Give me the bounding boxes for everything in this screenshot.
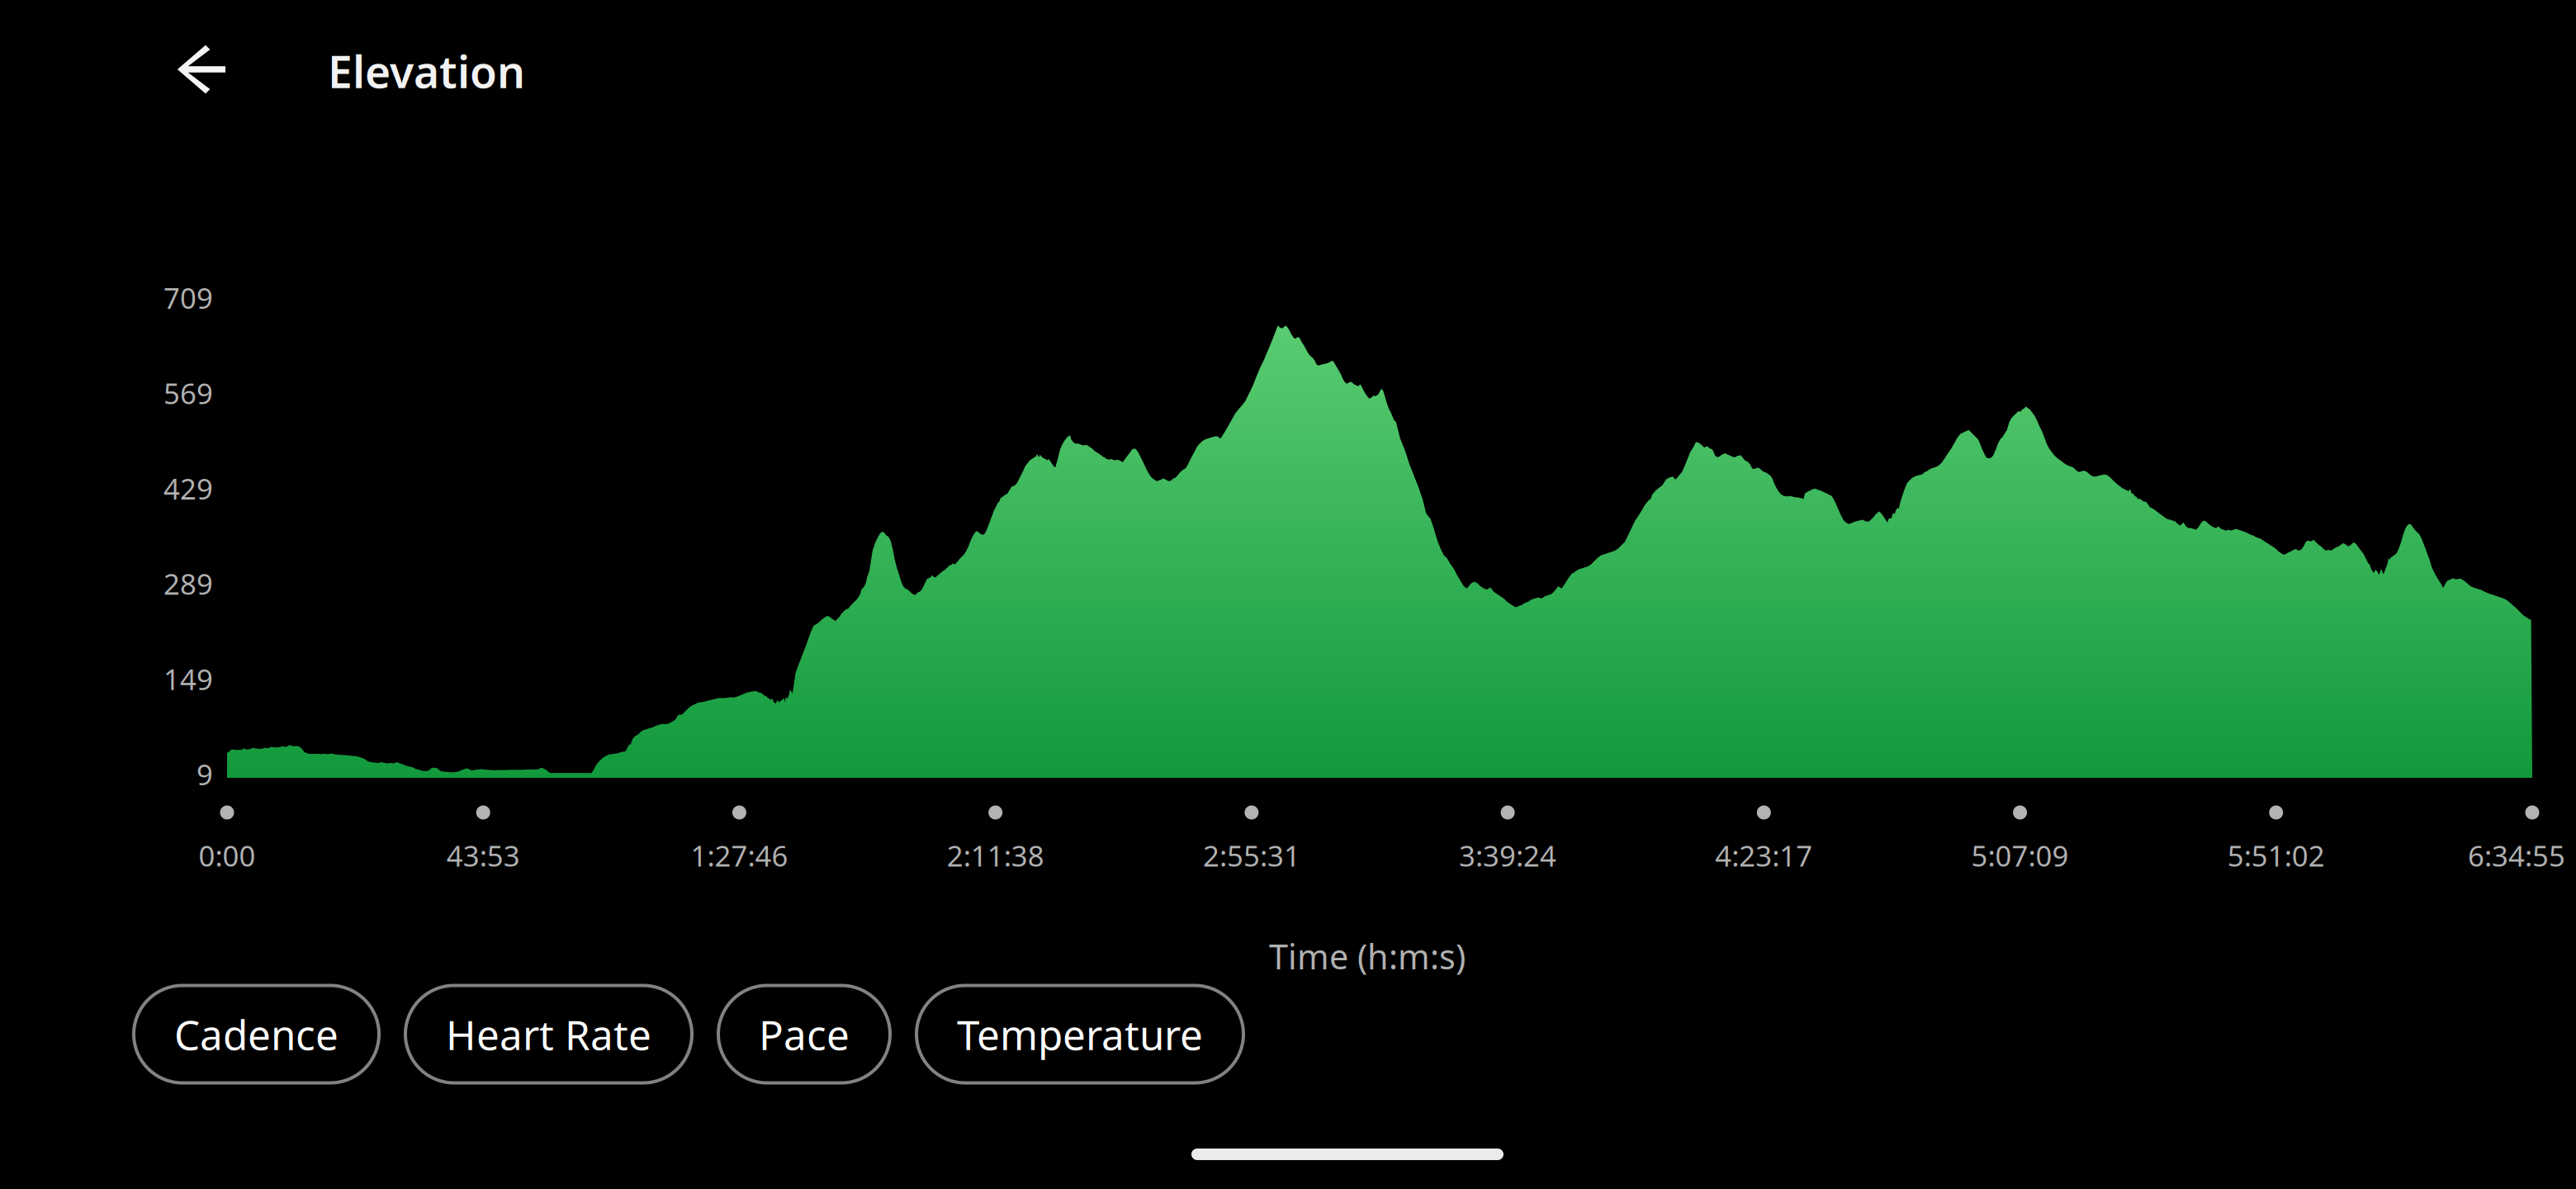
staticText: Heart Rate (446, 1007, 651, 1061)
staticText: 2:11:38 (947, 836, 1044, 874)
button[interactable]: Cadence (134, 985, 379, 1083)
staticText: 0:00 (199, 836, 256, 874)
button[interactable]: Back (159, 17, 245, 121)
staticText: 569 (163, 374, 213, 412)
staticText: 5:07:09 (1971, 836, 2069, 874)
staticText: 289 (163, 565, 213, 603)
staticText: Time (h:m:s) (1269, 934, 1466, 979)
staticText: Elevation (328, 42, 525, 100)
staticText: Cadence (174, 1007, 339, 1061)
staticText: 4:23:17 (1715, 836, 1813, 874)
staticText: 1:27:46 (691, 836, 788, 874)
staticText: 429 (163, 469, 213, 507)
staticText: Pace (759, 1007, 850, 1061)
staticText: 709 (163, 279, 213, 317)
staticText: Temperature (957, 1007, 1203, 1061)
staticText: 2:55:31 (1203, 836, 1300, 874)
staticText: 149 (163, 660, 213, 698)
staticText: 6:34:55 (2468, 836, 2565, 874)
staticText: 3:39:24 (1459, 836, 1556, 874)
button[interactable]: Pace (718, 985, 890, 1083)
button[interactable]: Temperature (916, 985, 1243, 1083)
staticText: 9 (197, 755, 213, 793)
staticText: 5:51:02 (2227, 836, 2325, 874)
button[interactable]: Heart Rate (405, 985, 692, 1083)
staticText: 43:53 (446, 836, 520, 874)
